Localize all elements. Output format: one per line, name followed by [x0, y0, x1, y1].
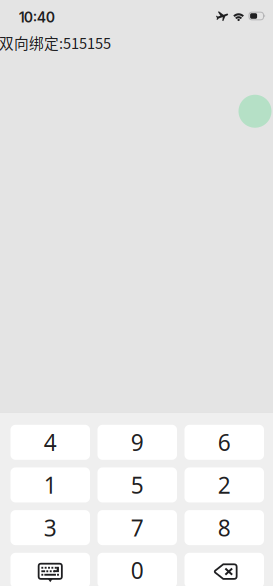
staticText: 4 — [44, 427, 57, 457]
staticText: 3 — [44, 513, 57, 543]
button[interactable]: 3 — [10, 510, 90, 545]
button[interactable]: 6 — [184, 425, 264, 460]
staticText: 0 — [131, 555, 144, 585]
staticText: 双向绑定:515155 — [0, 32, 111, 53]
button[interactable]: 8 — [184, 510, 264, 545]
button[interactable]: 7 — [97, 510, 177, 545]
button[interactable]: Delete — [184, 553, 264, 586]
button[interactable]: 4 — [10, 425, 90, 460]
button[interactable]: 1 — [10, 467, 90, 502]
button[interactable]: Hide keyboard — [10, 553, 90, 586]
staticText: 9 — [131, 427, 144, 457]
staticText: 5 — [131, 470, 144, 500]
staticText: 2 — [218, 470, 231, 500]
staticText: 7 — [131, 513, 144, 543]
staticText: 10:40 — [19, 9, 55, 26]
button[interactable]: 5 — [97, 467, 177, 502]
button[interactable]: 0 — [97, 553, 177, 586]
staticText: 8 — [218, 513, 231, 543]
staticText: 6 — [218, 427, 231, 457]
staticText: 1 — [44, 470, 57, 500]
button[interactable]: 2 — [184, 467, 264, 502]
button[interactable]: 9 — [97, 425, 177, 460]
